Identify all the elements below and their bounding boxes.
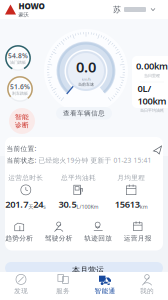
- button[interactable]: 查看车辆信息: [56, 107, 112, 120]
- button[interactable]: 趋势分析: [0, 221, 39, 242]
- staticText: 油门踏板: [10, 60, 26, 65]
- staticText: 查看车辆信息: [63, 109, 105, 117]
- staticText: 30.5: [58, 198, 76, 210]
- button[interactable]: 我的: [126, 271, 168, 300]
- staticText: 24: [33, 198, 43, 210]
- staticText: 轨迹回放: [84, 234, 112, 242]
- staticText: 总平均油耗: [61, 174, 96, 182]
- staticText: 天: [28, 204, 33, 210]
- staticText: 当前状态:: [6, 156, 38, 165]
- staticText: 月均里程: [117, 174, 145, 182]
- staticText: 我的: [140, 287, 154, 295]
- button[interactable]: 导航到车辆位置: [151, 144, 163, 156]
- staticText: 苏: [113, 5, 121, 14]
- staticText: 刹车踏板: [12, 91, 28, 96]
- staticText: 诊断: [15, 121, 29, 129]
- button[interactable]: 服务: [42, 271, 84, 300]
- staticText: 智能通: [94, 287, 115, 295]
- button[interactable]: 选择车辆: [111, 1, 157, 18]
- button[interactable]: 轨迹回放: [78, 221, 118, 242]
- button[interactable]: 智能通: [84, 271, 126, 300]
- staticText: 51.6%: [10, 82, 30, 91]
- staticText: 驾驶分析: [45, 234, 73, 242]
- staticText: 0L/100km: [137, 82, 166, 107]
- staticText: 15613: [115, 198, 140, 210]
- staticText: km/h: [81, 77, 90, 82]
- staticText: 豪沃: [18, 11, 28, 18]
- staticText: HOWO: [18, 1, 44, 11]
- staticText: 运营月报: [124, 234, 152, 242]
- staticText: 当日里程: [144, 73, 160, 78]
- button[interactable]: 智能: [9, 108, 35, 134]
- staticText: 0.0: [76, 57, 96, 77]
- staticText: 0.00km: [136, 60, 168, 72]
- staticText: 本月营运: [72, 265, 104, 275]
- staticText: 已经熄火19分钟 更新于 01-23 15:41: [38, 156, 151, 165]
- button[interactable]: 运营月报: [118, 221, 157, 242]
- staticText: 当日平均油耗: [140, 108, 164, 113]
- staticText: 54.8%: [8, 51, 28, 60]
- staticText: 趋势分析: [5, 234, 33, 242]
- staticText: 服务: [56, 287, 70, 295]
- staticText: 发现: [14, 287, 28, 295]
- button[interactable]: 驾驶分析: [39, 221, 78, 242]
- staticText: 运营总时长: [8, 174, 43, 182]
- button[interactable]: 发现: [0, 271, 42, 300]
- staticText: 当前位置:: [6, 144, 36, 153]
- staticText: L/100Km: [76, 203, 98, 210]
- staticText: 当前车速: [78, 82, 94, 87]
- staticText: km: [140, 203, 148, 210]
- staticText: 智能: [15, 113, 29, 121]
- staticText: 201.7: [5, 198, 28, 210]
- staticText: s: [43, 203, 46, 210]
